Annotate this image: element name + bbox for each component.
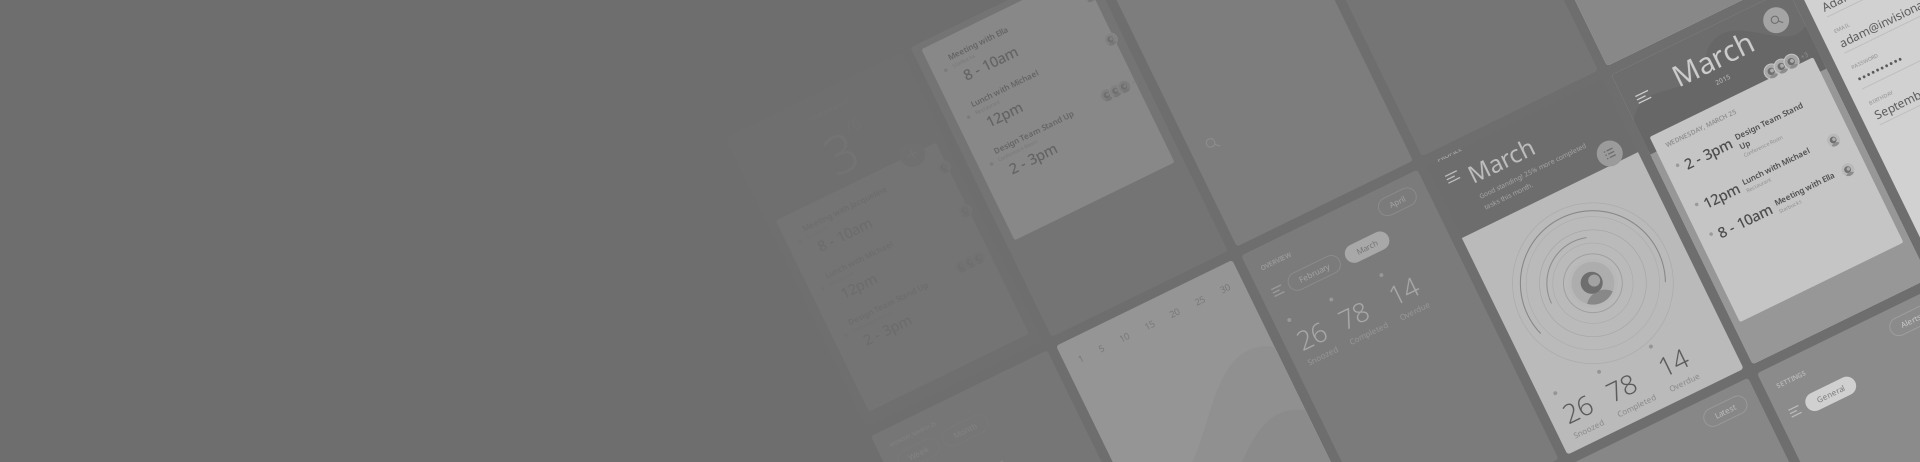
staticText: PASSWORD — [1870, 20, 1899, 27]
staticText: adam@invisionapp.com — [1870, 0, 1920, 5]
staticText: Completed — [1550, 409, 1592, 419]
button[interactable]: Search — [1831, 26, 1857, 52]
staticText: 8 - 10am — [1699, 196, 1758, 215]
staticText: WEDNESDAY, MARCH 25 — [1690, 98, 1768, 107]
staticText: 2015 — [1762, 64, 1778, 73]
staticText: Completed — [1362, 317, 1404, 327]
staticText: Restaurant — [1743, 175, 1770, 183]
staticText: September 12 — [1870, 69, 1920, 85]
staticText: 14 — [1607, 373, 1637, 409]
staticText: Latest — [1782, 419, 1805, 430]
staticText: Overdue — [1607, 409, 1640, 419]
button[interactable]: Latest — [1770, 415, 1816, 434]
staticText: WEDNESDAY, MARCH 25 — [1046, 5, 1106, 12]
staticText: 78 — [1550, 373, 1580, 409]
staticText: 26 — [1315, 281, 1345, 317]
staticText: Good standing! 25% more completed — [1521, 153, 1639, 162]
button[interactable]: February — [1332, 235, 1388, 253]
staticText: BIRTHDAY — [1870, 60, 1896, 67]
staticText: March — [1727, 26, 1814, 65]
staticText: tasks this month. — [1521, 165, 1574, 174]
staticText: 25 — [1261, 303, 1271, 315]
button[interactable]: Search — [1172, 109, 1186, 123]
staticText: 14 — [1417, 281, 1447, 317]
staticText: 1 — [1131, 303, 1136, 315]
staticText: February — [1343, 239, 1376, 249]
staticText: 2 - 3pm — [1699, 119, 1751, 138]
button[interactable]: List view — [1644, 163, 1670, 189]
staticText: OVERVIEW — [1314, 212, 1347, 221]
staticText: 10 — [1177, 303, 1187, 315]
staticText: Snoozed — [1315, 317, 1348, 327]
staticText: Starbucks — [1763, 208, 1788, 215]
